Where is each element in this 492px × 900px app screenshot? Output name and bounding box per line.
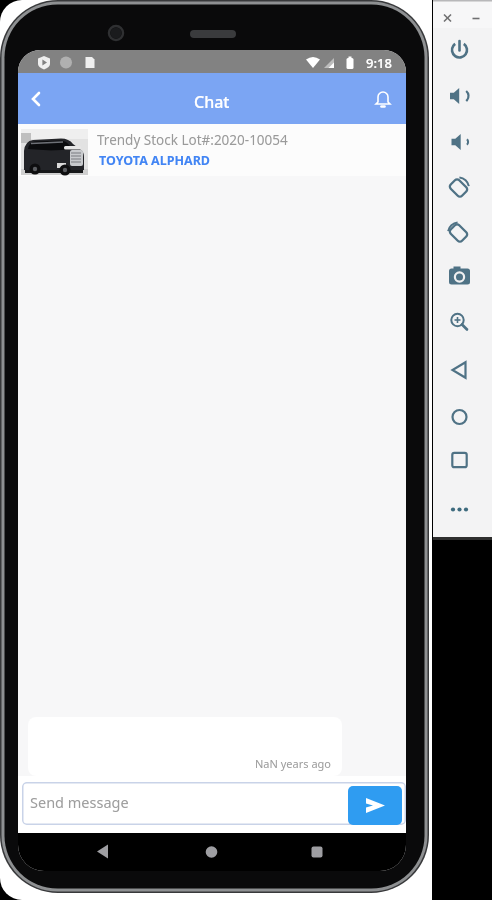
button[interactable] [445, 357, 470, 382]
button[interactable] [445, 309, 470, 334]
button[interactable] [445, 447, 470, 472]
button[interactable] [445, 37, 470, 62]
button[interactable] [348, 786, 402, 825]
button[interactable] [445, 264, 470, 289]
staticText: Send message [30, 792, 129, 812]
button[interactable] [445, 175, 470, 200]
button[interactable] [87, 837, 127, 867]
button[interactable] [20, 85, 52, 113]
staticText: NaN years ago [255, 756, 331, 771]
button[interactable] [369, 86, 397, 114]
button[interactable] [191, 837, 231, 867]
button[interactable] [445, 83, 470, 108]
button[interactable] [445, 497, 470, 522]
button[interactable]: Trendy Stock Lot#:2020-10054 [18, 124, 406, 176]
staticText: Trendy Stock Lot#:2020-10054 [97, 131, 288, 149]
button[interactable] [297, 837, 337, 867]
button[interactable] [445, 404, 470, 429]
button[interactable] [445, 129, 470, 154]
staticText: TOYOTA ALPHARD [99, 152, 211, 169]
staticText: Chat [194, 91, 230, 113]
staticText: 9:18 [366, 54, 392, 72]
button[interactable] [445, 220, 470, 245]
